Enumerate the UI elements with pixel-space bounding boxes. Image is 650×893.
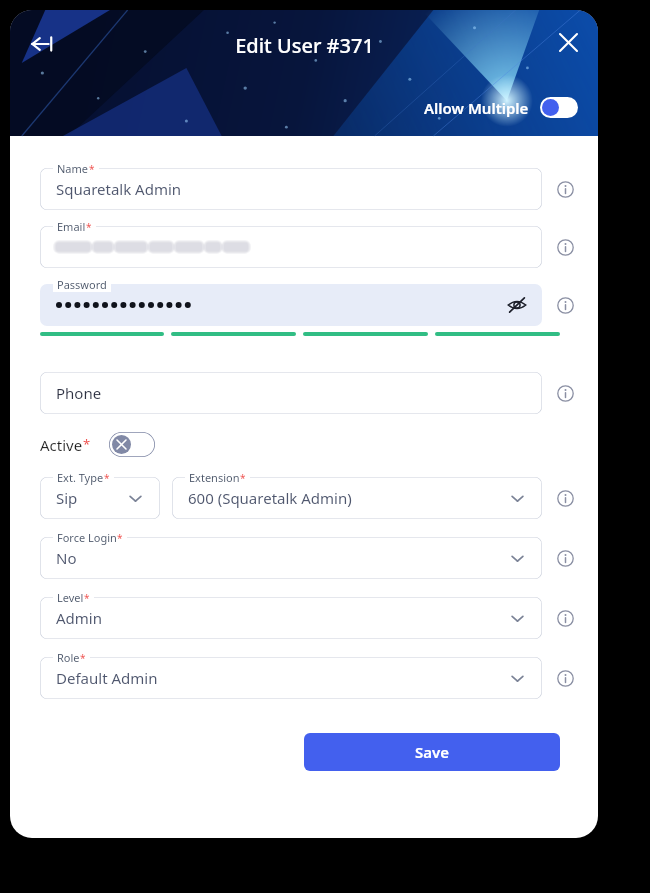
staticText: * <box>86 220 92 234</box>
staticText: Phone <box>56 383 530 403</box>
staticText: 600 (Squaretalk Admin) <box>188 488 504 508</box>
button[interactable]: Close <box>546 20 590 64</box>
button[interactable]: Open Force Login <box>504 545 530 571</box>
button[interactable] <box>40 597 542 639</box>
button[interactable] <box>40 168 542 210</box>
staticText: Save <box>415 742 450 762</box>
button[interactable]: Allow Multiple <box>424 97 578 118</box>
staticText: Active <box>40 435 83 455</box>
button[interactable]: Save <box>304 733 560 771</box>
button[interactable] <box>40 657 542 699</box>
button[interactable]: Info <box>552 665 578 691</box>
staticText: * <box>117 531 123 545</box>
staticText: Default Admin <box>56 668 504 688</box>
button[interactable]: Toggle password visibility <box>504 292 530 318</box>
staticText: Email <box>57 219 86 234</box>
button[interactable]: Active <box>40 432 155 457</box>
button[interactable]: Open Extension <box>504 485 530 511</box>
staticText: * <box>89 162 95 176</box>
staticText: * <box>84 591 90 605</box>
button[interactable] <box>40 226 542 268</box>
staticText: No <box>56 548 504 568</box>
staticText: * <box>83 435 91 453</box>
staticText: Name <box>57 161 89 176</box>
staticText: Edit User #371 <box>235 32 374 59</box>
staticText: Admin <box>56 608 504 628</box>
staticText: Sip <box>56 488 122 508</box>
staticText: Role <box>57 650 80 665</box>
button[interactable]: Info <box>552 292 578 318</box>
button[interactable]: Back <box>20 22 64 66</box>
staticText: * <box>240 471 246 485</box>
button[interactable]: Open Ext. Type <box>122 485 148 511</box>
button[interactable]: Info <box>552 485 578 511</box>
button[interactable]: Info <box>552 176 578 202</box>
button[interactable]: Open Level <box>504 605 530 631</box>
button[interactable] <box>40 477 160 519</box>
staticText: Allow Multiple <box>424 98 529 118</box>
staticText: Ext. Type <box>57 470 104 485</box>
button[interactable]: Info <box>552 605 578 631</box>
button[interactable] <box>40 372 542 414</box>
button[interactable] <box>40 284 542 326</box>
staticText: Password <box>57 277 107 292</box>
button[interactable]: Open Role <box>504 665 530 691</box>
button[interactable] <box>40 537 542 579</box>
staticText: Force Login <box>57 530 117 545</box>
staticText: * <box>80 651 86 665</box>
staticText: * <box>104 471 110 485</box>
button[interactable]: Info <box>552 234 578 260</box>
button[interactable] <box>172 477 542 519</box>
staticText: Level <box>57 590 84 605</box>
button[interactable]: Info <box>552 380 578 406</box>
staticText: Extension <box>189 470 240 485</box>
button[interactable]: Info <box>552 545 578 571</box>
staticText: Squaretalk Admin <box>56 179 530 199</box>
